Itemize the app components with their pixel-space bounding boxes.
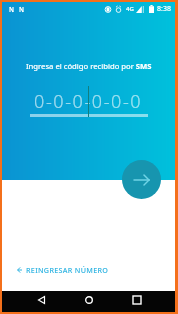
button[interactable]: Home [76, 291, 102, 309]
button[interactable]: Continuar [122, 160, 161, 199]
staticText: 0-0-0-0-0-0 [34, 89, 143, 114]
staticText: Ingresa el código recibido por SMS [26, 61, 152, 71]
button[interactable]: REINGRESAR NÚMERO [17, 265, 109, 275]
staticText: REINGRESAR NÚMERO [26, 265, 109, 275]
button[interactable]: Recents [124, 291, 150, 309]
staticText: 8:38 [157, 4, 171, 14]
button[interactable]: Back [28, 291, 54, 309]
staticText: 4G [126, 5, 134, 13]
